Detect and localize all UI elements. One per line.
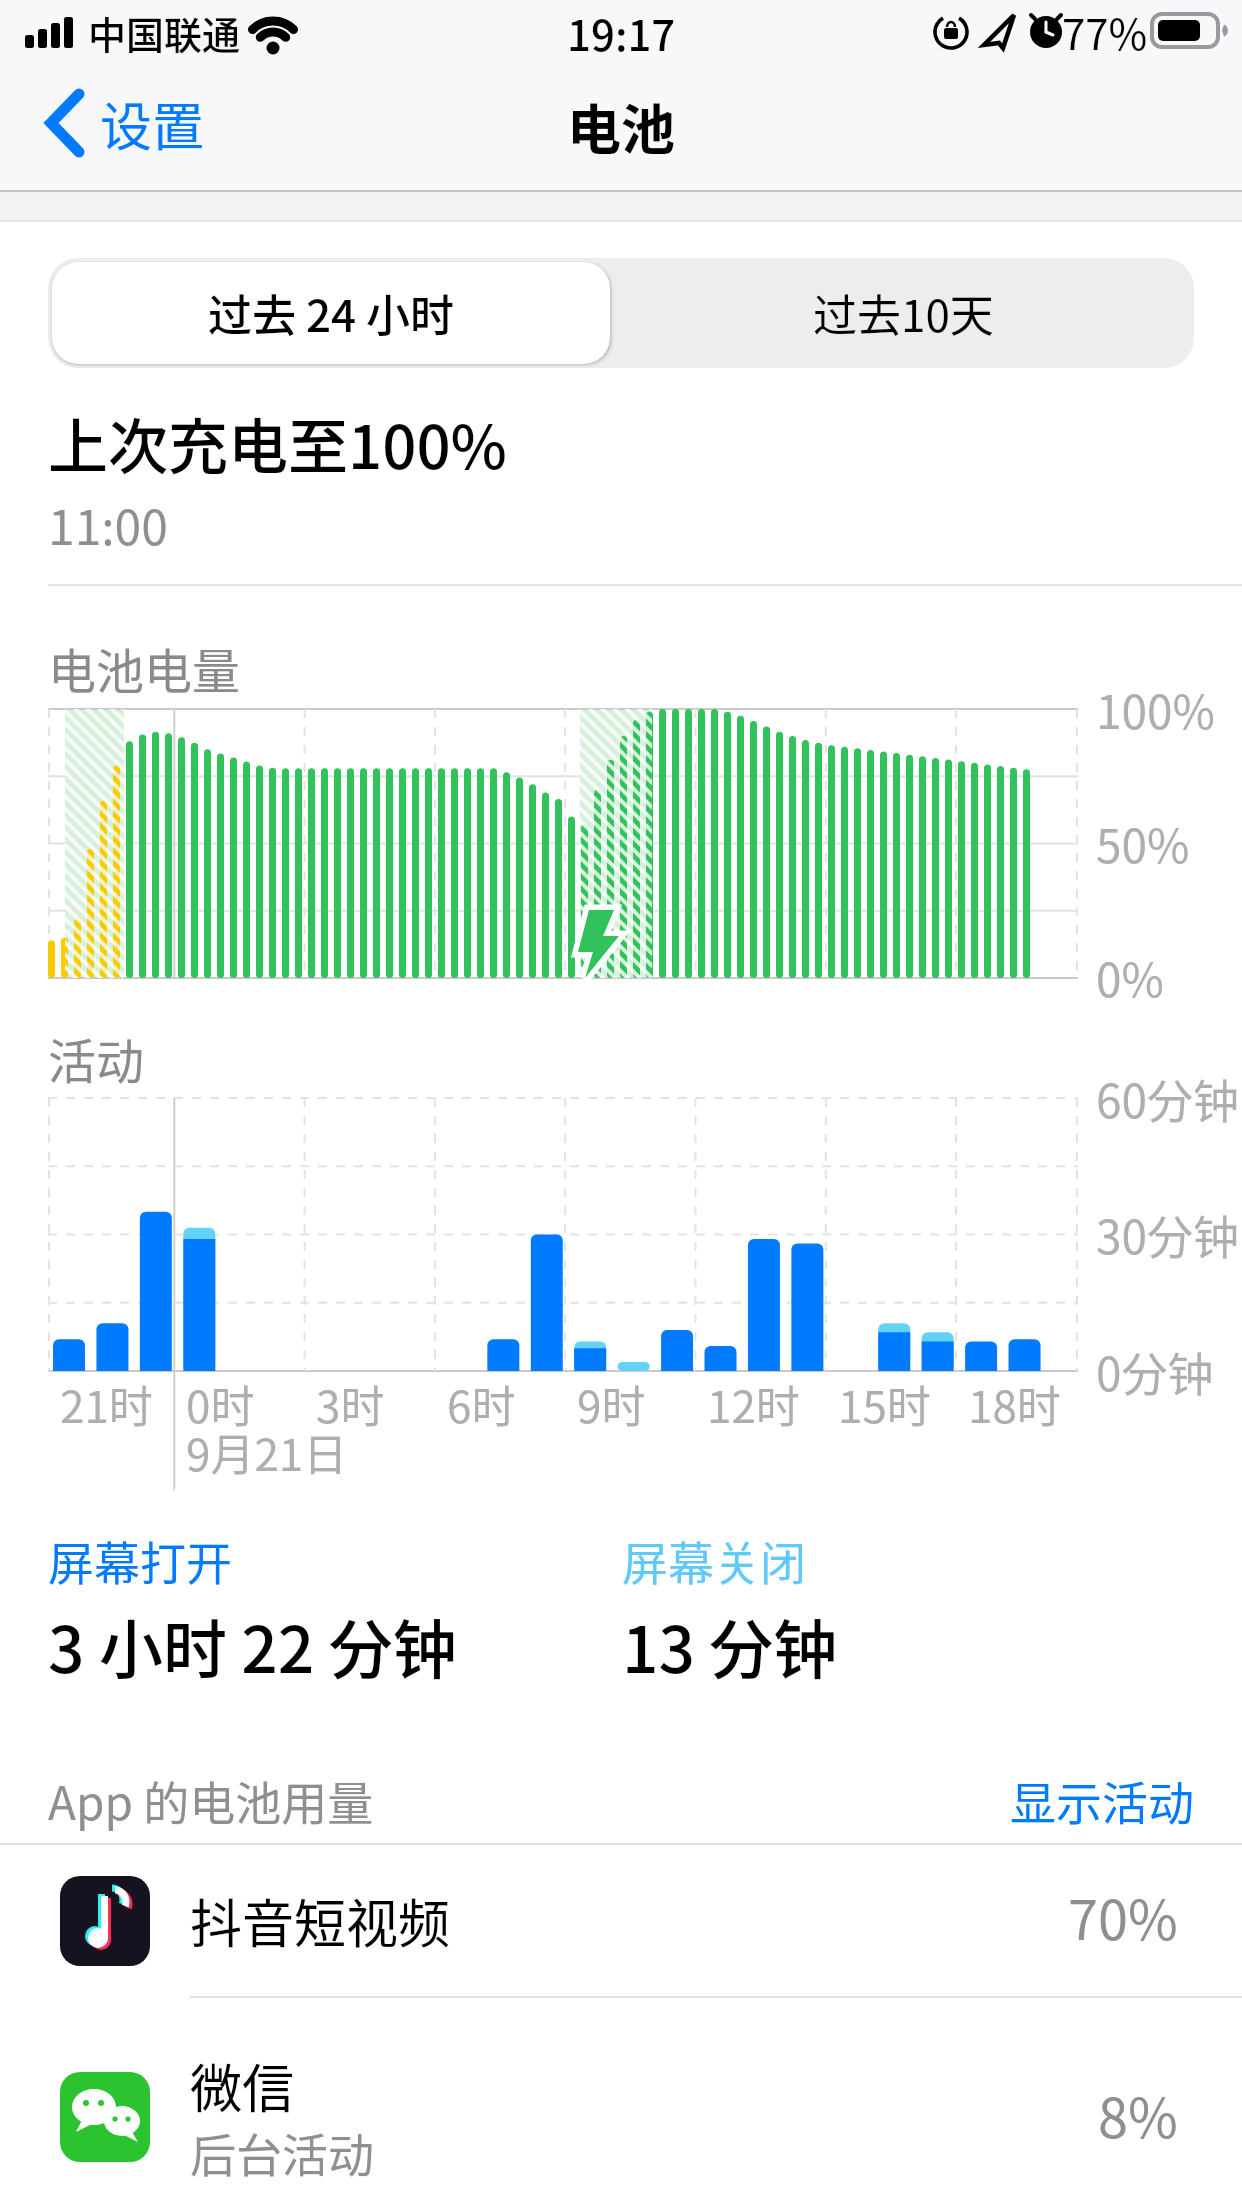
staticText: 0时 (186, 1372, 255, 1436)
staticText: 12时 (707, 1372, 800, 1436)
button[interactable]: 过去10天 (612, 262, 1194, 364)
staticText: 8% (1098, 2075, 1178, 2153)
button[interactable] (0, 1845, 1242, 1996)
staticText: 0% (1096, 944, 1164, 1011)
staticText: App 的电池用量 (48, 1767, 374, 1834)
staticText: 13 分钟 (622, 1599, 838, 1692)
staticText: 6时 (447, 1372, 516, 1436)
staticText: 9月21日 (186, 1420, 348, 1484)
staticText: 微信 (190, 2048, 295, 2123)
staticText: 过去 24 小时 (208, 281, 454, 345)
button[interactable]: 显示活动 (894, 1740, 1194, 1860)
staticText: 3 小时 22 分钟 (48, 1599, 457, 1692)
staticText: 18时 (968, 1372, 1061, 1436)
staticText: 设置 (100, 86, 205, 161)
staticText: 60分钟 (1096, 1065, 1240, 1132)
staticText: 电池电量 (48, 633, 241, 703)
staticText: 11:00 (48, 489, 168, 559)
staticText: 后台活动 (190, 2119, 374, 2186)
staticText: 21时 (60, 1372, 153, 1436)
staticText: 显示活动 (1010, 1767, 1194, 1834)
staticText: 屏幕打开 (48, 1527, 232, 1594)
staticText: 70% (1068, 1877, 1178, 1955)
staticText: 屏幕关闭 (622, 1527, 806, 1594)
staticText: 100% (1096, 676, 1215, 743)
staticText: 抖音短视频 (190, 1883, 451, 1958)
button[interactable] (0, 1998, 1242, 2208)
staticText: 中国联通 (88, 5, 241, 60)
staticText: 9时 (577, 1372, 646, 1436)
staticText: 30分钟 (1096, 1201, 1240, 1268)
staticText: 活动 (48, 1023, 145, 1093)
staticText: 0分钟 (1096, 1338, 1214, 1405)
staticText: 50% (1096, 810, 1190, 877)
staticText: 过去10天 (813, 281, 994, 345)
staticText: 3时 (316, 1372, 385, 1436)
staticText: 19:17 (567, 2, 676, 63)
button[interactable] (40, 90, 260, 160)
staticText: 77% (1062, 1, 1148, 62)
staticText: 15时 (838, 1372, 931, 1436)
button[interactable]: 过去 24 小时 (52, 262, 610, 364)
staticText: 上次充电至100% (48, 399, 507, 486)
staticText: 电池 (567, 87, 675, 165)
